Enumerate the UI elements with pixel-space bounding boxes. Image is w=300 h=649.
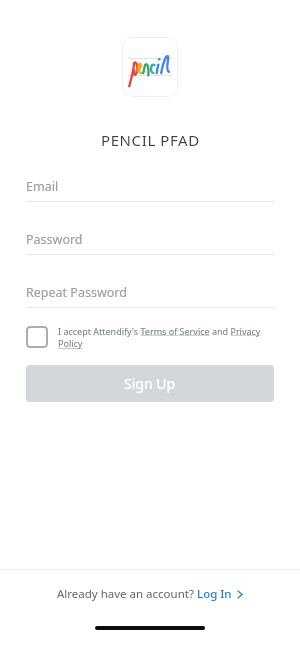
staticText: Email [26,178,59,195]
button[interactable]: Already have an account? [0,570,300,618]
staticText: Password [26,231,83,248]
staticText: Already have an account? [57,586,197,602]
staticText: I accept Attendify's Terms of Service an… [58,325,274,350]
button[interactable]: Repeat Password [26,284,274,308]
button[interactable]: Pencil logo [122,37,178,97]
staticText: Log In [197,586,232,602]
button[interactable]: Password [26,231,274,255]
button[interactable]: Sign Up [26,365,274,402]
staticText: Repeat Password [26,284,127,301]
other: Accept terms checkbox [26,326,48,348]
button[interactable]: Accept terms checkbox [26,325,274,350]
button[interactable]: Email [26,178,274,202]
staticText: PENCIL PFAD [101,130,200,150]
staticText: Sign Up [124,374,176,393]
